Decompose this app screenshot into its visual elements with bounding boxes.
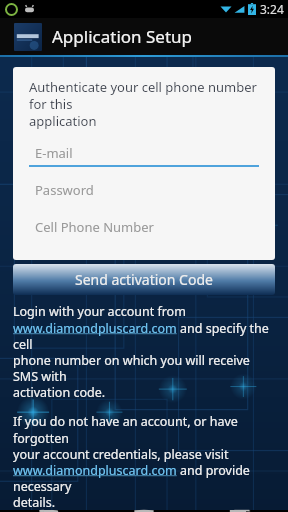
staticText: Send activation Code bbox=[75, 270, 213, 289]
button[interactable]: Send activation Code bbox=[13, 264, 275, 295]
staticText: Authenticate your cell phone number for … bbox=[29, 78, 259, 130]
button[interactable]: E-mail bbox=[29, 143, 259, 167]
button[interactable]: Cell Phone Number bbox=[29, 217, 259, 241]
button[interactable]: Password bbox=[29, 180, 259, 204]
button[interactable]: Login with your account from www.diamond… bbox=[13, 303, 275, 400]
button[interactable]: Home bbox=[96, 510, 192, 512]
staticText: Cell Phone Number bbox=[35, 218, 154, 236]
staticText: 3:24 bbox=[260, 1, 284, 17]
button[interactable]: If you do not have an account, or have f… bbox=[13, 413, 275, 510]
staticText: Password bbox=[35, 181, 94, 199]
staticText: Application Setup bbox=[52, 25, 192, 48]
button[interactable]: Back bbox=[0, 510, 96, 512]
other: Diamond Plus logo bbox=[14, 23, 42, 51]
button[interactable]: Recents bbox=[192, 510, 288, 512]
staticText: E-mail bbox=[35, 144, 73, 162]
